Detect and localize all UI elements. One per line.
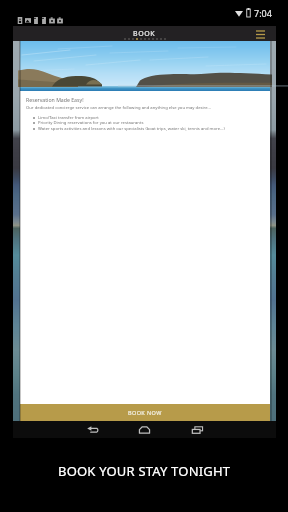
button[interactable]: Recent apps	[184, 421, 210, 438]
staticText: BOOK YOUR STAY TONIGHT	[58, 462, 231, 480]
staticText: BOOK NOW	[128, 409, 162, 416]
staticText: Water sports activities and lessons with…	[38, 126, 225, 132]
button[interactable]: BOOK NOW	[20, 404, 270, 421]
button[interactable]: Home	[131, 421, 157, 438]
staticText: Reservation Made Easy!	[26, 96, 84, 103]
staticText: Limo/Taxi transfer from airport	[38, 115, 99, 121]
button[interactable]: Back	[79, 421, 105, 438]
button[interactable]: Menu	[253, 27, 267, 41]
staticText: Priority Dining reservations for you at …	[38, 120, 144, 126]
staticText: 7:04	[254, 7, 272, 19]
staticText: BOOK	[133, 29, 156, 39]
staticText: Our dedicated concierge service can arra…	[26, 105, 211, 111]
